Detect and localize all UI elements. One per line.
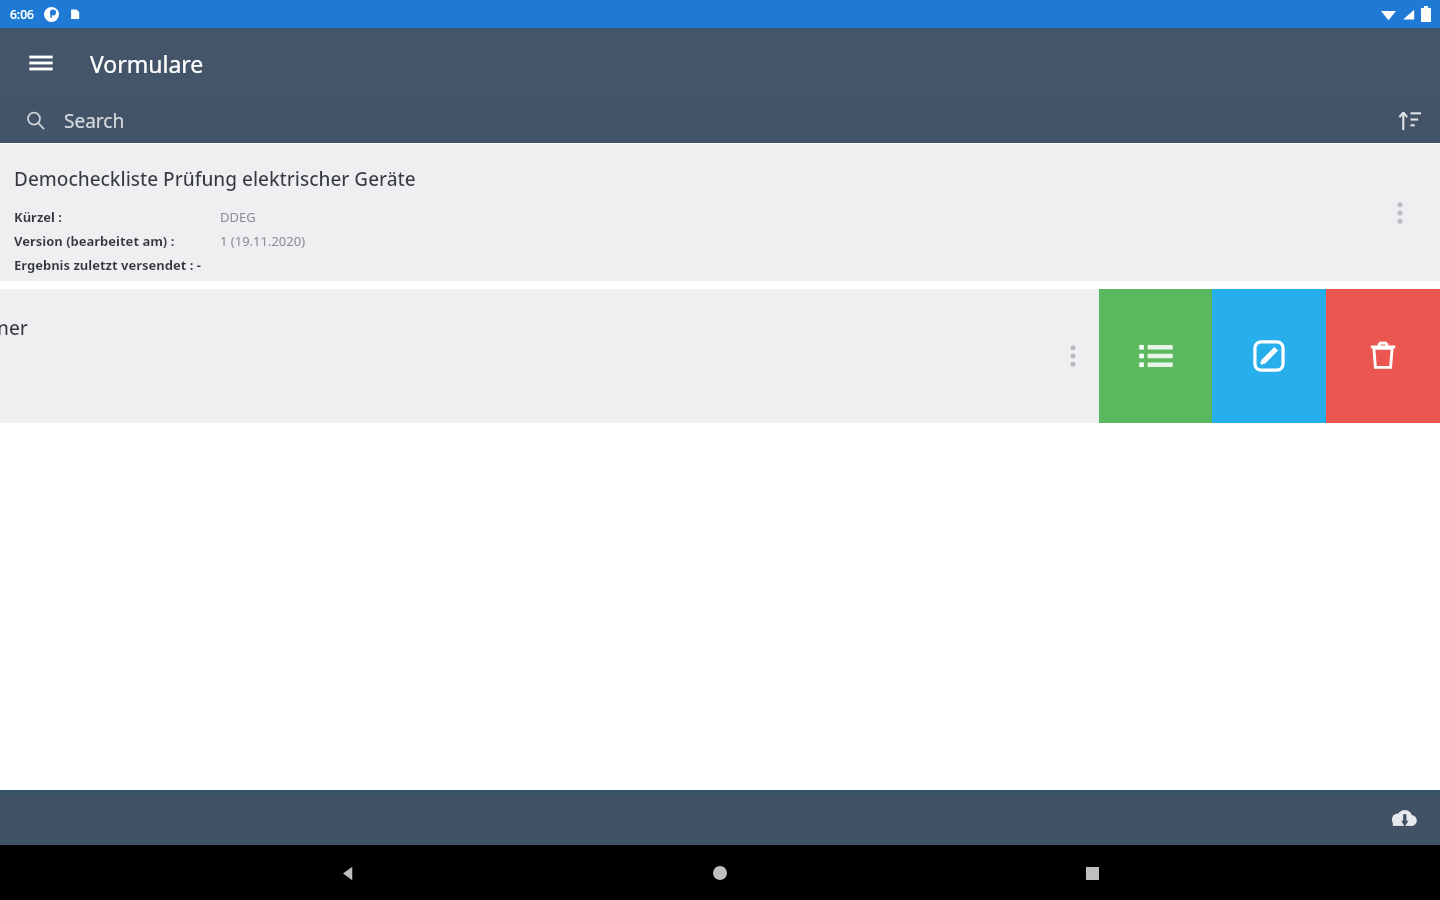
staticText: DDEG: [220, 208, 256, 226]
button[interactable]: Edit: [1212, 289, 1326, 423]
button[interactable]: More options: [1378, 191, 1422, 235]
button[interactable]: More options: [1051, 334, 1095, 378]
button[interactable]: Checklist: [1099, 289, 1212, 423]
staticText: Search: [64, 108, 125, 134]
button[interactable]: Sort: [1386, 98, 1434, 143]
button[interactable]: Back: [324, 849, 372, 897]
button[interactable]: Recent apps: [1068, 849, 1116, 897]
staticText: 6:06: [10, 6, 34, 22]
staticText: Ergebnis zuletzt versendet : -: [14, 256, 201, 274]
staticText: Democheckliste Prüfung elektrischer Gerä…: [14, 166, 416, 192]
staticText: Vormulare: [90, 48, 204, 79]
button[interactable]: Download: [1380, 796, 1426, 842]
button[interactable]: Search: [0, 98, 1440, 143]
staticText: 1 (19.11.2020): [220, 232, 306, 250]
staticText: Version (bearbeitet am) :: [14, 232, 175, 250]
button[interactable]: Home: [696, 849, 744, 897]
staticText: ner: [0, 315, 28, 341]
staticText: Kürzel :: [14, 208, 62, 226]
button[interactable]: ner: [0, 289, 1440, 423]
button[interactable]: Democheckliste Prüfung elektrischer Gerä…: [0, 144, 1440, 281]
button[interactable]: Delete: [1326, 289, 1440, 423]
button[interactable]: Open navigation menu: [14, 36, 68, 90]
